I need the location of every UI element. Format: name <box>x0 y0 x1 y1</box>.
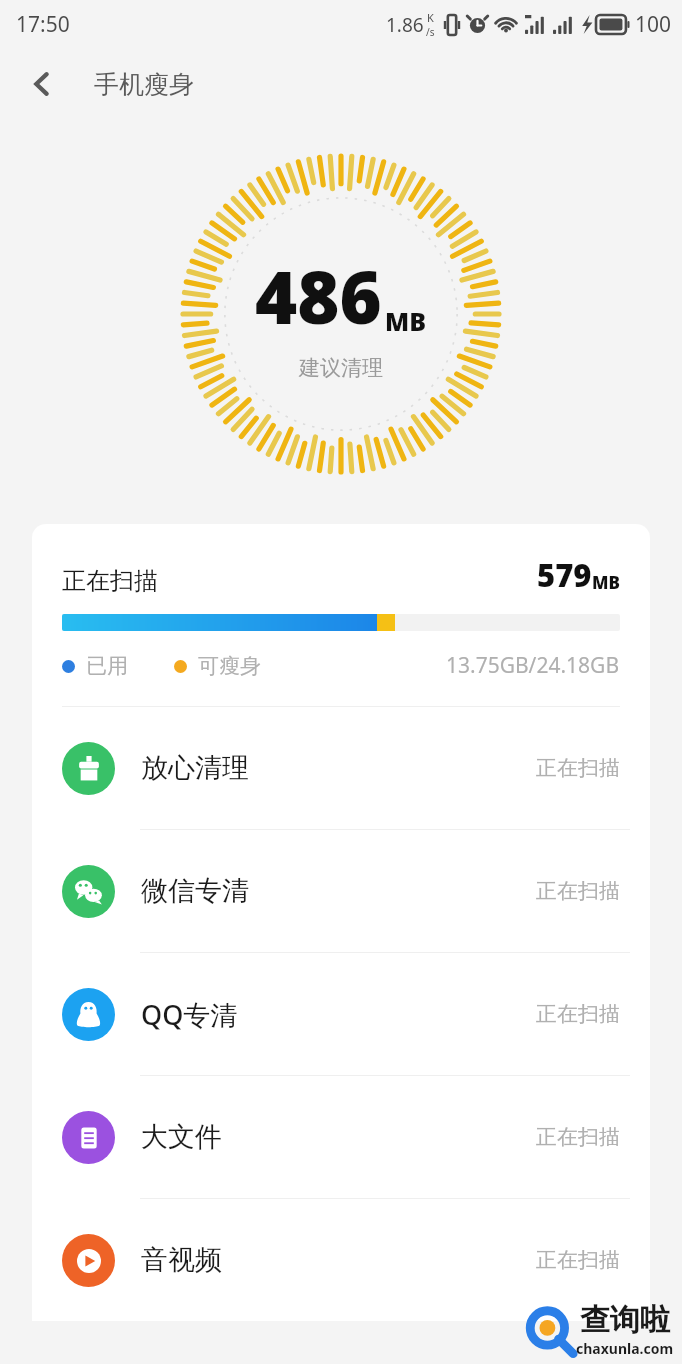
staticText: 13.75GB/24.18GB <box>446 651 620 680</box>
button[interactable]: 放心清理 <box>32 707 650 830</box>
button[interactable]: 大文件 <box>32 1076 650 1199</box>
button[interactable]: 微信专清 <box>32 830 650 953</box>
staticText: 正在扫描 <box>62 566 158 596</box>
staticText: 17:50 <box>16 10 70 39</box>
staticText: 已用 <box>86 653 128 679</box>
staticText: chaxunla.com <box>576 1339 674 1358</box>
staticText: 建议清理 <box>299 355 383 381</box>
staticText: 579 <box>537 554 592 596</box>
staticText: 手机瘦身 <box>94 69 194 100</box>
staticText: 正在扫描 <box>536 878 620 904</box>
staticText: 正在扫描 <box>536 1247 620 1273</box>
staticText: K <box>427 10 434 25</box>
staticText: QQ专清 <box>141 996 238 1033</box>
staticText: /s <box>426 25 435 39</box>
button[interactable]: QQ专清 <box>32 953 650 1076</box>
staticText: MB <box>385 304 427 338</box>
staticText: 正在扫描 <box>536 1124 620 1150</box>
staticText: 正在扫描 <box>536 1001 620 1027</box>
staticText: 音视频 <box>141 1243 222 1277</box>
staticText: 大文件 <box>141 1120 222 1154</box>
button[interactable]: 音视频 <box>32 1199 650 1321</box>
staticText: 可瘦身 <box>198 653 261 679</box>
staticText: 1.86 <box>386 12 424 38</box>
staticText: MB <box>592 571 620 594</box>
staticText: 查询啦 <box>580 1301 670 1339</box>
button[interactable]: Back <box>14 56 70 112</box>
staticText: 100 <box>635 10 672 39</box>
staticText: 正在扫描 <box>536 755 620 781</box>
staticText: 放心清理 <box>141 751 249 785</box>
staticText: 486 <box>255 247 382 345</box>
staticText: 微信专清 <box>141 874 249 908</box>
